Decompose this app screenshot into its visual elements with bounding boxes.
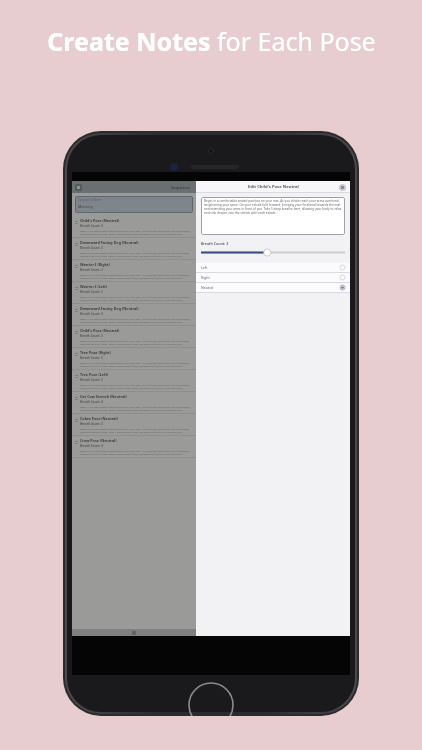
- staticText: Breath Count: 3: [80, 422, 103, 426]
- staticText: Warrior I (Left): [80, 284, 108, 289]
- staticText: Breath Count: 3: [80, 378, 103, 382]
- staticText: Breath Count: 3: [80, 268, 103, 272]
- staticText: Sequence: [171, 185, 190, 190]
- button[interactable]: Downward Facing Dog (Neutral): [72, 238, 196, 259]
- staticText: Breath Count: 3: [80, 356, 103, 360]
- staticText: Begin in a comfortable seated position o…: [80, 251, 194, 257]
- staticText: Downward Facing Dog (Neutral): [80, 240, 139, 245]
- staticText: Warrior I (Right): [80, 262, 110, 267]
- staticText: Tree Pose (Left): [80, 372, 109, 377]
- staticText: Breath Count: 3: [201, 241, 229, 246]
- staticText: Breath Count: 4: [80, 400, 103, 404]
- staticText: Edit Child's Pose Neutral: [248, 184, 299, 190]
- button[interactable]: Add pose: [132, 631, 136, 635]
- staticText: Begin in a comfortable seated position o…: [80, 229, 194, 235]
- staticText: Neutral: [201, 285, 214, 290]
- staticText: Left: [201, 265, 208, 270]
- button[interactable]: Warrior I (Right): [72, 260, 196, 281]
- staticText: Breath Count: 3: [80, 290, 103, 294]
- staticText: Begin in a comfortable seated position o…: [80, 405, 194, 411]
- button[interactable]: Left: [196, 263, 350, 272]
- staticText: Begin in a comfortable seated position o…: [204, 199, 342, 215]
- staticText: Child's Pose (Neutral): [80, 218, 120, 223]
- staticText: Right: [201, 275, 210, 280]
- button[interactable]: Close: [339, 184, 346, 191]
- button[interactable]: Begin in a comfortable seated position o…: [201, 197, 345, 235]
- button[interactable]: Back: [75, 184, 82, 191]
- staticText: Breath Count: 3: [80, 334, 103, 338]
- button[interactable]: Tree Pose (Right): [72, 348, 196, 369]
- button[interactable]: Home: [188, 682, 234, 716]
- staticText: Downward Facing Dog (Neutral): [80, 306, 139, 311]
- button[interactable]: Crow Pose (Neutral): [72, 436, 196, 457]
- button[interactable]: Cobra Pose (Neutral): [72, 414, 196, 435]
- staticText: Sequence Name: [78, 198, 103, 202]
- staticText: Cobra Pose (Neutral): [80, 416, 118, 421]
- staticText: Breath Count: 3: [80, 312, 103, 316]
- staticText: Begin in a comfortable seated position o…: [80, 427, 194, 433]
- button[interactable]: Child's Pose (Neutral): [72, 326, 196, 347]
- button[interactable]: Downward Facing Dog (Neutral): [72, 304, 196, 325]
- staticText: Breath Count: 3: [80, 224, 103, 228]
- staticText: Breath Count: 3: [80, 246, 103, 250]
- button[interactable]: Warrior I (Left): [72, 282, 196, 303]
- staticText: Begin in a comfortable seated position o…: [80, 273, 194, 279]
- staticText: Breath Count: 4: [80, 444, 103, 448]
- button[interactable]: Right: [196, 273, 350, 282]
- staticText: Begin in a comfortable seated position o…: [80, 317, 194, 323]
- staticText: Child's Pose (Neutral): [80, 328, 120, 333]
- staticText: Create Notes for Each Pose: [47, 24, 376, 58]
- staticText: Begin in a comfortable seated position o…: [80, 449, 194, 455]
- staticText: Crow Pose (Neutral): [80, 438, 117, 443]
- staticText: Begin in a comfortable seated position o…: [80, 383, 194, 389]
- button[interactable]: Neutral: [196, 283, 350, 292]
- staticText: Tree Pose (Right): [80, 350, 111, 355]
- staticText: Begin in a comfortable seated position o…: [80, 339, 194, 345]
- staticText: Begin in a comfortable seated position o…: [80, 361, 194, 367]
- button[interactable]: Sequence Name: [75, 196, 193, 213]
- button[interactable]: [201, 249, 345, 256]
- button[interactable]: Tree Pose (Left): [72, 370, 196, 391]
- button[interactable]: Cat Cow Stretch (Neutral): [72, 392, 196, 413]
- staticText: Cat Cow Stretch (Neutral): [80, 394, 127, 399]
- button[interactable]: Child's Pose (Neutral): [72, 216, 196, 237]
- staticText: Morning: [78, 204, 93, 209]
- staticText: Begin in a comfortable seated position o…: [80, 295, 194, 301]
